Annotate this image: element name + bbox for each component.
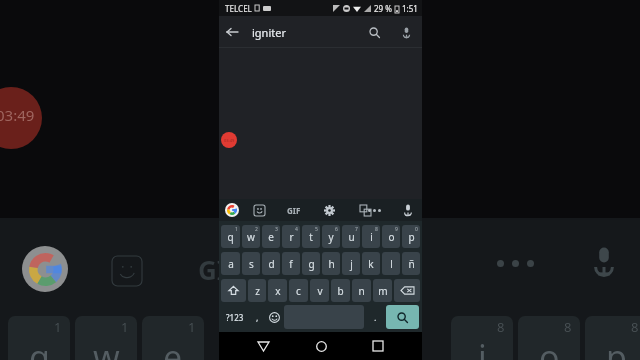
button[interactable]: t [302,225,320,248]
staticText: GI [198,252,227,287]
button[interactable]: More options [368,202,384,218]
staticText: y [328,230,334,244]
staticText: 4 [295,226,298,233]
button[interactable]: w [242,225,260,248]
button[interactable]: l [382,252,400,275]
staticText: o [539,334,560,360]
button[interactable]: c [289,279,308,302]
button[interactable]: o [382,225,400,248]
staticText: s [249,257,254,271]
staticText: f [289,257,293,271]
staticText: 8 [631,318,639,336]
staticText: 03:49 [0,105,35,125]
staticText: r [289,230,294,244]
staticText: 9 [395,226,398,233]
staticText: 1 [188,318,196,336]
staticText: 8 [497,318,505,336]
button[interactable]: k [362,252,380,275]
button[interactable]: b [331,279,350,302]
button[interactable]: Home [307,332,335,360]
button[interactable]: g [302,252,320,275]
staticText: 03:49 [224,138,235,143]
staticText: x [275,284,281,298]
staticText: q [29,334,50,360]
staticText: igniter [252,25,286,40]
button[interactable]: r [282,225,300,248]
button[interactable]: Voice input [400,202,416,218]
button[interactable]: ñ [402,252,420,275]
staticText: q [227,230,234,244]
button[interactable]: e [262,225,280,248]
button[interactable]: Back [219,19,245,45]
button[interactable]: j [342,252,360,275]
button[interactable]: . [365,305,385,329]
button[interactable]: n [352,279,371,302]
button[interactable]: s [242,252,260,275]
button[interactable]: v [310,279,329,302]
button[interactable]: f [282,252,300,275]
staticText: 1 [54,318,62,336]
button[interactable]: i [362,225,380,248]
button[interactable]: Translate [357,202,373,218]
staticText: a [228,257,234,271]
button[interactable]: ?123 [221,305,249,329]
staticText: v [317,284,323,298]
staticText: GIF [287,205,301,216]
staticText: p [606,334,627,360]
button[interactable]: p [402,225,420,248]
staticText: 29 % [374,3,392,14]
staticText: t [309,230,313,244]
staticText: 1 [121,318,129,336]
button[interactable]: Voice search [396,22,416,42]
staticText: p [408,230,415,244]
staticText: TELCEL [225,3,252,14]
staticText: h [328,257,335,271]
staticText: m [378,284,388,298]
staticText: 8 [564,318,572,336]
staticText: 0 [415,226,418,233]
button[interactable]: a [221,252,240,275]
staticText: n [358,284,365,298]
button[interactable]: d [262,252,280,275]
button[interactable]: Shift [221,279,246,302]
button[interactable]: Search [364,22,384,42]
staticText: 1:51 [402,3,418,14]
staticText: e [163,334,183,360]
button[interactable]: h [322,252,340,275]
staticText: 8 [375,226,378,233]
staticText: o [388,230,395,244]
staticText: d [268,257,275,271]
button[interactable]: u [342,225,360,248]
button[interactable]: Stickers [251,202,267,218]
staticText: l [390,257,393,271]
button[interactable]: Back [249,332,277,360]
staticText: k [368,257,374,271]
button[interactable]: , [249,305,266,329]
staticText: , [256,311,259,323]
staticText: i [478,334,487,360]
staticText: j [350,257,353,271]
button[interactable]: Settings [321,202,337,218]
staticText: u [348,230,355,244]
button[interactable]: Search [386,305,419,329]
staticText: e [268,230,274,244]
button[interactable]: GIF [287,205,301,216]
staticText: w [247,230,255,244]
staticText: w [93,334,120,360]
staticText: 7 [355,226,358,233]
button[interactable]: Emoji [266,305,283,329]
staticText: c [296,284,301,298]
button[interactable]: Recents [364,332,392,360]
staticText: ñ [408,257,415,271]
button[interactable]: m [373,279,392,302]
staticText: z [255,284,260,298]
button[interactable]: Backspace [394,279,420,302]
button[interactable]: q [221,225,240,248]
button[interactable]: z [248,279,266,302]
button[interactable]: y [322,225,340,248]
staticText: . [374,311,377,323]
button[interactable]: x [268,279,287,302]
staticText: 2 [255,226,258,233]
staticText: 3 [275,226,278,233]
